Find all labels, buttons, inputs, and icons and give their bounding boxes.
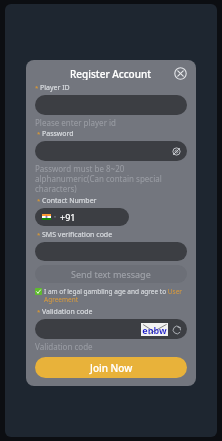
staticText: * <box>37 130 41 138</box>
staticText: Contact Number <box>42 196 97 206</box>
staticText: * <box>37 197 41 205</box>
button[interactable]: Captcha image <box>141 323 168 336</box>
staticText: * <box>35 84 39 92</box>
staticText: Player ID <box>40 83 70 93</box>
staticText: Validation code <box>42 307 93 317</box>
button[interactable]: Toggle password visibility <box>35 141 187 161</box>
button[interactable]: Refresh captcha <box>172 325 182 335</box>
staticText: I am of legal gambling age and agree to … <box>44 287 187 304</box>
staticText: SMS verification code <box>42 230 113 240</box>
button[interactable] <box>35 242 187 261</box>
staticText: * <box>37 308 41 316</box>
button[interactable]: Captcha image <box>35 319 187 339</box>
staticText: * <box>37 231 41 239</box>
staticText: Join Now <box>90 361 133 375</box>
staticText: enbw <box>142 324 167 336</box>
staticText: Register Account <box>70 67 152 80</box>
staticText: Please enter player id <box>35 117 116 128</box>
staticText: Password must be 8~20 alphanumeric(Can c… <box>35 163 187 194</box>
button[interactable]: Send text message <box>35 265 187 283</box>
staticText: +91 <box>60 211 76 223</box>
button[interactable]: Toggle password visibility <box>172 147 181 156</box>
staticText: Password <box>42 129 74 139</box>
button[interactable]: I am of legal gambling age and agree to … <box>35 287 187 304</box>
staticText: Validation code <box>35 341 93 352</box>
button[interactable]: Close <box>174 67 187 80</box>
button[interactable]: +91 <box>35 208 129 226</box>
staticText: Send text message <box>71 268 151 280</box>
button[interactable]: Join Now <box>35 357 187 378</box>
button[interactable] <box>35 95 187 115</box>
